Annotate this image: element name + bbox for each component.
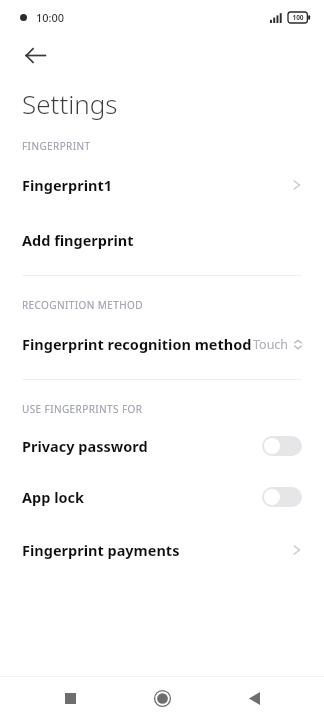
button[interactable]: Add fingerprint [0,226,324,254]
staticText: USE FINGERPRINTS FOR [22,402,143,416]
button[interactable]: Back [14,34,56,76]
staticText: Settings [22,86,118,121]
staticText: Fingerprint1 [22,175,292,195]
staticText: Fingerprint payments [22,540,292,560]
staticText: 100 [292,13,304,22]
button[interactable]: Privacy password [0,434,324,458]
button[interactable]: Fingerprint1 [0,171,324,199]
button[interactable]: Home [140,676,184,720]
button[interactable]: Fingerprint recognition method [0,330,324,358]
staticText: App lock [22,487,262,507]
staticText: 10:00 [36,10,65,25]
staticText: Fingerprint recognition method [22,334,253,354]
staticText: FINGERPRINT [22,139,91,153]
button[interactable]: Back [232,676,276,720]
staticText: Touch [253,336,289,353]
button[interactable]: Fingerprint payments [0,536,324,564]
staticText: RECOGNITION METHOD [22,298,143,312]
staticText: Privacy password [22,436,262,456]
button[interactable]: App lock [0,485,324,509]
staticText: Add fingerprint [22,230,302,250]
button[interactable]: Recents [48,676,92,720]
